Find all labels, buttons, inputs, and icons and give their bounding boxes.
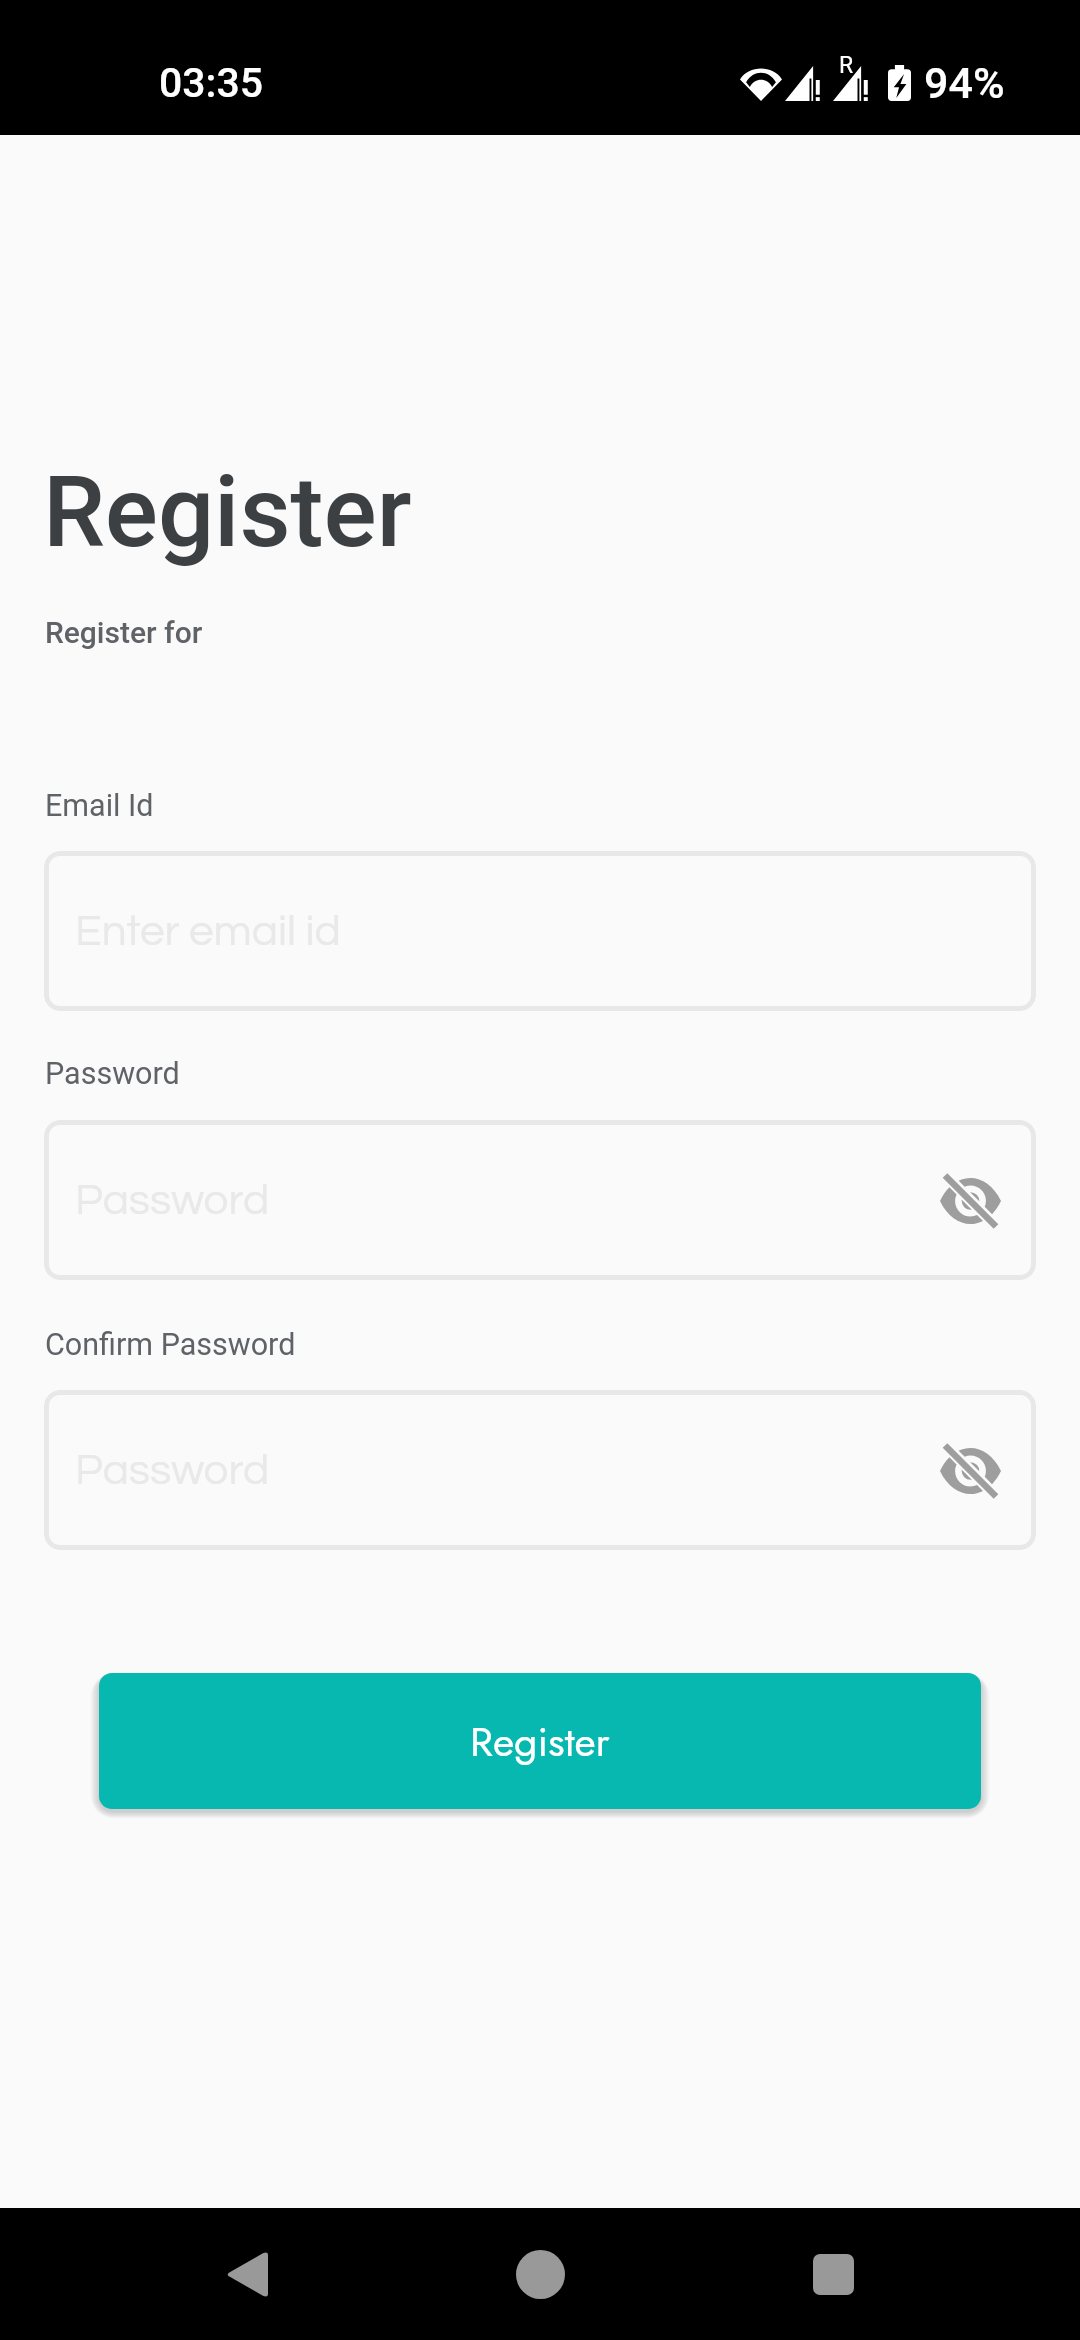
staticText: Password: [75, 1178, 270, 1223]
staticText: Register: [43, 454, 412, 570]
staticText: 03:35: [159, 59, 264, 107]
staticText: Password: [75, 1448, 270, 1493]
staticText: Email Id: [45, 788, 154, 824]
staticText: Register for: [45, 615, 203, 650]
staticText: Confirm Password: [45, 1327, 296, 1363]
button[interactable]: Password: [44, 1120, 1036, 1280]
button[interactable]: Recent apps: [763, 2208, 903, 2340]
staticText: R: [839, 52, 854, 79]
button[interactable]: Register: [99, 1673, 981, 1809]
button[interactable]: Home: [470, 2208, 610, 2340]
button[interactable]: Enter email id: [44, 851, 1036, 1011]
button[interactable]: Password: [44, 1390, 1036, 1550]
button[interactable]: Toggle password visibility: [923, 1423, 1018, 1518]
staticText: Enter email id: [75, 909, 341, 954]
button[interactable]: Toggle password visibility: [923, 1153, 1018, 1248]
staticText: Password: [45, 1056, 180, 1092]
staticText: 94%: [924, 58, 1005, 108]
button[interactable]: Back: [177, 2208, 317, 2340]
staticText: Register: [470, 1712, 610, 1771]
